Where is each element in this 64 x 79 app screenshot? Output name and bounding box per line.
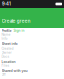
staticText: Created <box>2 47 14 50</box>
staticText: Create green <box>2 18 31 24</box>
staticText: Files <box>2 64 10 67</box>
staticText: Sheet info <box>2 42 18 46</box>
staticText: Sign in <box>14 29 25 33</box>
staticText: Owner <box>2 51 12 54</box>
staticText: Profile <box>2 29 12 33</box>
staticText: Location <box>2 60 16 64</box>
staticText: 9:41 <box>2 1 11 7</box>
staticText: Name <box>2 33 11 36</box>
staticText: Docs <box>2 55 10 58</box>
staticText: Shared with you <box>2 69 28 73</box>
staticText: Info <box>2 37 8 40</box>
staticText: Off <box>2 73 6 76</box>
